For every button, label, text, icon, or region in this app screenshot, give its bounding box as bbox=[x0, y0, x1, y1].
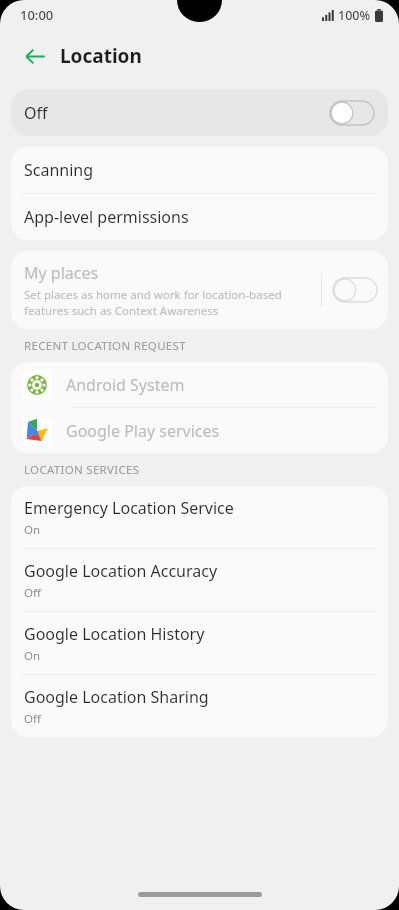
staticText: Google Location Accuracy bbox=[24, 560, 218, 582]
button[interactable]: Google Location Accuracy bbox=[11, 549, 388, 611]
staticText: LOCATION SERVICES bbox=[24, 462, 140, 478]
button[interactable]: Google Play services bbox=[11, 408, 388, 453]
staticText: Set places as home and work for location… bbox=[24, 287, 282, 318]
staticText: On bbox=[24, 648, 41, 664]
staticText: Location bbox=[60, 43, 142, 69]
staticText: 10:00 bbox=[20, 6, 54, 24]
staticText: Scanning bbox=[24, 159, 94, 181]
staticText: Off bbox=[24, 585, 41, 601]
staticText: App-level permissions bbox=[24, 206, 189, 228]
button[interactable]: Google Location History bbox=[11, 612, 388, 674]
staticText: Off bbox=[24, 711, 41, 727]
button[interactable]: Back bbox=[18, 39, 52, 73]
staticText: On bbox=[24, 522, 41, 538]
staticText: Google Location History bbox=[24, 623, 205, 645]
button[interactable]: Emergency Location Service bbox=[11, 486, 388, 548]
staticText: Google Location Sharing bbox=[24, 686, 209, 708]
button[interactable]: Off bbox=[11, 89, 388, 136]
staticText: My places bbox=[24, 262, 99, 284]
button[interactable]: Scanning bbox=[11, 147, 388, 193]
button[interactable]: Google Location Sharing bbox=[11, 675, 388, 737]
button[interactable]: App-level permissions bbox=[11, 194, 388, 240]
staticText: Off bbox=[24, 102, 48, 124]
staticText: Emergency Location Service bbox=[24, 497, 234, 519]
button[interactable]: My places bbox=[11, 251, 388, 329]
staticText: Android System bbox=[66, 374, 185, 396]
staticText: Google Play services bbox=[66, 420, 220, 442]
staticText: RECENT LOCATION REQUEST bbox=[24, 338, 186, 354]
staticText: 100% bbox=[338, 7, 371, 24]
button[interactable]: Android System bbox=[11, 362, 388, 407]
